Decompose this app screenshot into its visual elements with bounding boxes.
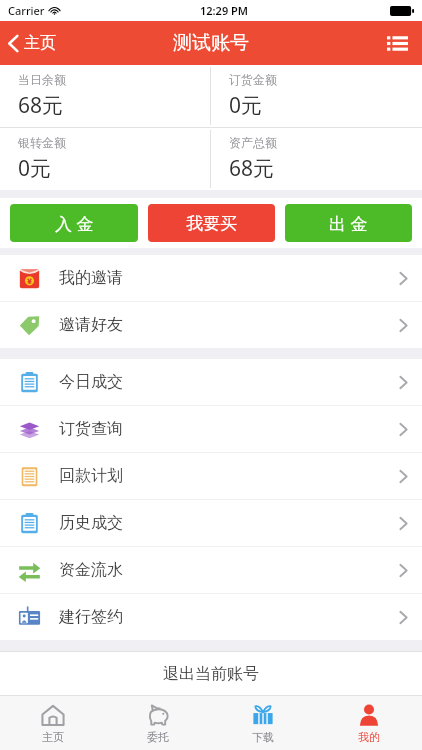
staticText: 邀请好友	[59, 315, 123, 335]
button[interactable]: 资金流水	[0, 547, 422, 593]
staticText: 68元	[18, 91, 64, 120]
staticText: 建行签约	[59, 607, 123, 627]
button[interactable]: 订货查询	[0, 406, 422, 452]
staticText: 历史成交	[59, 513, 123, 533]
staticText: 我要买	[186, 213, 237, 234]
staticText: 当日余额	[18, 72, 66, 87]
staticText: 退出当前账号	[163, 664, 259, 684]
button[interactable]: 我的	[316, 696, 422, 750]
staticText: 下载	[252, 730, 274, 744]
staticText: 银转金额	[18, 135, 66, 150]
staticText: 入 金	[55, 212, 94, 235]
staticText: 出 金	[329, 212, 368, 235]
button[interactable]: Menu	[373, 25, 422, 62]
button[interactable]: 主页	[0, 696, 105, 750]
button[interactable]: 今日成交	[0, 359, 422, 405]
staticText: 今日成交	[59, 372, 123, 392]
button[interactable]: 历史成交	[0, 500, 422, 546]
staticText: 0元	[229, 91, 263, 120]
staticText: 资产总额	[229, 135, 277, 150]
staticText: 我的邀请	[59, 268, 123, 288]
button[interactable]: 出 金	[285, 204, 412, 242]
button[interactable]: 入 金	[10, 204, 138, 242]
staticText: 订货金额	[229, 72, 277, 87]
button[interactable]: 我的邀请	[0, 255, 422, 301]
staticText: 68元	[229, 154, 275, 183]
button[interactable]: 退出当前账号	[0, 652, 422, 695]
button[interactable]: 委托	[105, 696, 210, 750]
button[interactable]: 主页	[0, 27, 66, 59]
staticText: 委托	[147, 730, 169, 744]
staticText: 主页	[42, 730, 64, 744]
staticText: 测试账号	[173, 31, 249, 55]
staticText: 12:29 PM	[200, 3, 249, 18]
staticText: 订货查询	[59, 419, 123, 439]
staticText: 0元	[18, 154, 52, 183]
button[interactable]: 下载	[210, 696, 316, 750]
staticText: 回款计划	[59, 466, 123, 486]
staticText: 主页	[24, 33, 56, 53]
button[interactable]: 建行签约	[0, 594, 422, 640]
staticText: 资金流水	[59, 560, 123, 580]
staticText: Carrier	[8, 3, 45, 18]
button[interactable]: 我要买	[148, 204, 275, 242]
staticText: 我的	[358, 730, 380, 744]
button[interactable]: 邀请好友	[0, 302, 422, 348]
button[interactable]: 回款计划	[0, 453, 422, 499]
